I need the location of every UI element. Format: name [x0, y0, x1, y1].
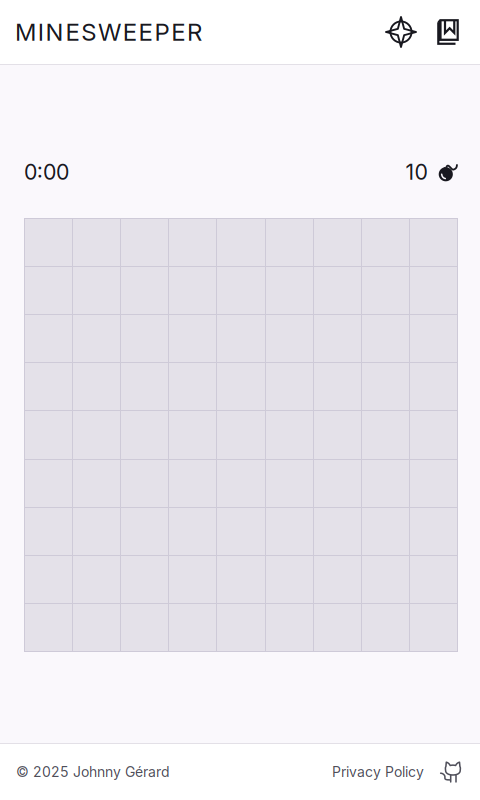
- button[interactable]: Cell row 6 column 2: [72, 459, 120, 507]
- button[interactable]: Cell row 7 column 9: [409, 507, 457, 555]
- button[interactable]: Cell row 9 column 5: [216, 603, 264, 651]
- button[interactable]: Cell row 9 column 6: [265, 603, 313, 651]
- staticText: 0:00: [24, 159, 69, 185]
- button[interactable]: Cell row 9 column 2: [72, 603, 120, 651]
- button[interactable]: Cell row 5 column 9: [409, 410, 457, 458]
- button[interactable]: Cell row 1 column 4: [168, 218, 216, 266]
- button[interactable]: Cell row 5 column 5: [216, 410, 264, 458]
- button[interactable]: GitHub repository: [435, 757, 465, 787]
- button[interactable]: Cell row 2 column 3: [120, 266, 168, 314]
- button[interactable]: Cell row 7 column 6: [265, 507, 313, 555]
- button[interactable]: Cell row 2 column 4: [168, 266, 216, 314]
- button[interactable]: Cell row 9 column 3: [120, 603, 168, 651]
- button[interactable]: Cell row 1 column 6: [265, 218, 313, 266]
- staticText: 10: [405, 159, 427, 185]
- staticText: © 2025 Johnny Gérard: [16, 763, 170, 780]
- button[interactable]: Cell row 3 column 1: [24, 314, 72, 362]
- button[interactable]: Cell row 6 column 8: [361, 459, 409, 507]
- button[interactable]: Cell row 2 column 8: [361, 266, 409, 314]
- button[interactable]: Cell row 5 column 6: [265, 410, 313, 458]
- button[interactable]: Cell row 5 column 4: [168, 410, 216, 458]
- button[interactable]: Privacy Policy: [332, 763, 424, 780]
- button[interactable]: Cell row 8 column 9: [409, 555, 457, 603]
- staticText: Privacy Policy: [332, 763, 424, 780]
- button[interactable]: Cell row 4 column 5: [216, 362, 264, 410]
- button[interactable]: Cell row 4 column 1: [24, 362, 72, 410]
- button[interactable]: Cell row 6 column 3: [120, 459, 168, 507]
- button[interactable]: Cell row 7 column 1: [24, 507, 72, 555]
- button[interactable]: Cell row 6 column 5: [216, 459, 264, 507]
- button[interactable]: Cell row 7 column 5: [216, 507, 264, 555]
- button[interactable]: Cell row 5 column 7: [313, 410, 361, 458]
- button[interactable]: Cell row 1 column 9: [409, 218, 457, 266]
- button[interactable]: Cell row 6 column 9: [409, 459, 457, 507]
- staticText: MINESWEEPER: [15, 17, 202, 46]
- button[interactable]: Cell row 8 column 3: [120, 555, 168, 603]
- button[interactable]: Cell row 4 column 6: [265, 362, 313, 410]
- button[interactable]: Cell row 8 column 2: [72, 555, 120, 603]
- button[interactable]: Cell row 4 column 7: [313, 362, 361, 410]
- button[interactable]: Cell row 5 column 8: [361, 410, 409, 458]
- button[interactable]: Cell row 4 column 8: [361, 362, 409, 410]
- button[interactable]: Cell row 4 column 3: [120, 362, 168, 410]
- button[interactable]: Cell row 3 column 5: [216, 314, 264, 362]
- button[interactable]: Cell row 9 column 8: [361, 603, 409, 651]
- button[interactable]: Cell row 4 column 9: [409, 362, 457, 410]
- button[interactable]: Cell row 2 column 9: [409, 266, 457, 314]
- button[interactable]: Cell row 7 column 2: [72, 507, 120, 555]
- button[interactable]: Cell row 3 column 3: [120, 314, 168, 362]
- button[interactable]: Cell row 7 column 4: [168, 507, 216, 555]
- button[interactable]: Cell row 3 column 9: [409, 314, 457, 362]
- button[interactable]: Cell row 5 column 1: [24, 410, 72, 458]
- button[interactable]: Cell row 9 column 9: [409, 603, 457, 651]
- button[interactable]: Cell row 8 column 5: [216, 555, 264, 603]
- button[interactable]: Cell row 1 column 3: [120, 218, 168, 266]
- button[interactable]: Cell row 2 column 6: [265, 266, 313, 314]
- button[interactable]: Cell row 1 column 5: [216, 218, 264, 266]
- button[interactable]: Cell row 8 column 1: [24, 555, 72, 603]
- button[interactable]: Cell row 1 column 2: [72, 218, 120, 266]
- button[interactable]: Cell row 4 column 2: [72, 362, 120, 410]
- button[interactable]: Cell row 3 column 8: [361, 314, 409, 362]
- button[interactable]: Cell row 9 column 7: [313, 603, 361, 651]
- button[interactable]: Cell row 7 column 8: [361, 507, 409, 555]
- button[interactable]: Cell row 3 column 7: [313, 314, 361, 362]
- button[interactable]: Cell row 7 column 7: [313, 507, 361, 555]
- button[interactable]: Cell row 8 column 6: [265, 555, 313, 603]
- button[interactable]: Cell row 9 column 4: [168, 603, 216, 651]
- button[interactable]: Cell row 6 column 6: [265, 459, 313, 507]
- button[interactable]: Cell row 2 column 7: [313, 266, 361, 314]
- button[interactable]: Cell row 1 column 8: [361, 218, 409, 266]
- button[interactable]: Cell row 5 column 2: [72, 410, 120, 458]
- button[interactable]: Cell row 9 column 1: [24, 603, 72, 651]
- button[interactable]: Cell row 6 column 4: [168, 459, 216, 507]
- button[interactable]: Cell row 3 column 2: [72, 314, 120, 362]
- button[interactable]: Cell row 6 column 7: [313, 459, 361, 507]
- button[interactable]: Cell row 3 column 6: [265, 314, 313, 362]
- button[interactable]: Cell row 8 column 4: [168, 555, 216, 603]
- button[interactable]: Cell row 8 column 8: [361, 555, 409, 603]
- button[interactable]: Cell row 1 column 7: [313, 218, 361, 266]
- button[interactable]: Cell row 1 column 1: [24, 218, 72, 266]
- button[interactable]: Cell row 4 column 4: [168, 362, 216, 410]
- button[interactable]: Choose difficulty: [374, 10, 428, 54]
- button[interactable]: Cell row 2 column 1: [24, 266, 72, 314]
- button[interactable]: Cell row 5 column 3: [120, 410, 168, 458]
- button[interactable]: Cell row 2 column 2: [72, 266, 120, 314]
- button[interactable]: Cell row 7 column 3: [120, 507, 168, 555]
- button[interactable]: Cell row 8 column 7: [313, 555, 361, 603]
- button[interactable]: Cell row 6 column 1: [24, 459, 72, 507]
- button[interactable]: Cell row 2 column 5: [216, 266, 264, 314]
- button[interactable]: Cell row 3 column 4: [168, 314, 216, 362]
- button[interactable]: How to play: [428, 10, 468, 54]
